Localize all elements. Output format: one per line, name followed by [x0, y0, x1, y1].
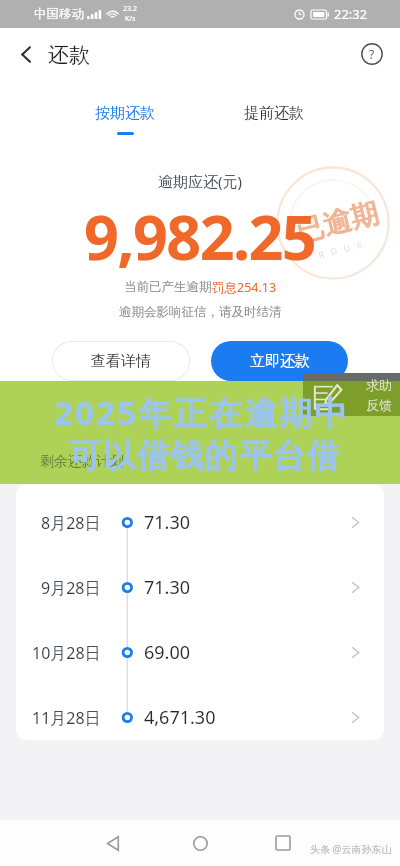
- staticText: 按期还款: [95, 104, 155, 123]
- button[interactable]: 查看详情: [52, 341, 190, 381]
- button[interactable]: 提前还款: [244, 104, 304, 123]
- button[interactable]: 8月28日: [16, 490, 384, 555]
- staticText: K/s: [125, 14, 136, 24]
- staticText: ?: [369, 46, 375, 62]
- staticText: 立即还款: [250, 352, 310, 371]
- staticText: 逾期应还(元): [158, 171, 243, 191]
- button[interactable]: 9月28日: [16, 555, 384, 620]
- button[interactable]: Home: [180, 823, 220, 863]
- staticText: 还款: [48, 42, 90, 68]
- staticText: 22:32: [334, 5, 368, 23]
- staticText: 9月28日: [41, 577, 101, 599]
- staticText: 头条 @云南孙东山: [310, 842, 392, 856]
- staticText: 23.2: [123, 4, 137, 14]
- staticText: 查看详情: [91, 352, 151, 371]
- button[interactable]: Recents: [263, 823, 303, 863]
- staticText: 中国移动: [34, 6, 84, 22]
- staticText: 已逾期: [292, 195, 382, 250]
- button[interactable]: 求助反馈: [303, 373, 400, 416]
- staticText: R D U E: [317, 238, 363, 260]
- button[interactable]: Back: [6, 34, 46, 74]
- staticText: 求助: [366, 377, 392, 393]
- button[interactable]: 11月28日: [16, 685, 384, 740]
- staticText: 69.00: [144, 640, 191, 665]
- staticText: 当前已产生逾期: [124, 279, 212, 295]
- staticText: 11月28日: [32, 707, 101, 729]
- staticText: 8月28日: [41, 512, 101, 534]
- staticText: 2025年正在逾期中: [54, 390, 350, 435]
- staticText: 罚息254.13: [212, 279, 277, 296]
- button[interactable]: Back: [93, 823, 133, 863]
- staticText: 10月28日: [32, 642, 101, 664]
- button[interactable]: 立即还款: [211, 341, 348, 381]
- staticText: 9,982.25: [84, 195, 316, 278]
- staticText: 提前还款: [244, 104, 304, 123]
- staticText: 4,671.30: [144, 705, 216, 730]
- staticText: 逾期会影响征信，请及时结清: [119, 304, 282, 320]
- button[interactable]: 按期还款: [95, 104, 155, 135]
- staticText: 71.30: [144, 510, 191, 535]
- staticText: 反馈: [366, 397, 392, 413]
- button[interactable]: 10月28日: [16, 620, 384, 685]
- button[interactable]: Help: [354, 36, 390, 72]
- staticText: 剩余还款计划: [40, 453, 124, 471]
- staticText: 可以借钱的平台借: [68, 435, 340, 477]
- staticText: 71.30: [144, 575, 191, 600]
